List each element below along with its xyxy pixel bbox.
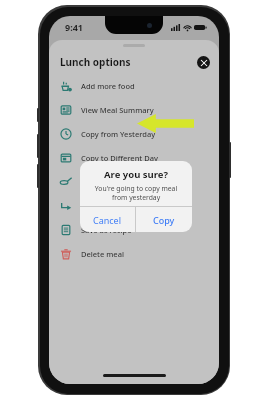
button[interactable]: View Meal Summary — [49, 98, 219, 122]
staticText: Are you sure? — [104, 168, 168, 181]
staticText: You're going to copy meal from yesterday — [87, 184, 185, 202]
staticText: Delete meal — [81, 249, 124, 259]
staticText: Save as recipe — [81, 225, 132, 235]
button[interactable]: Delete meal — [49, 242, 219, 266]
button[interactable]: Copy — [136, 207, 192, 232]
staticText: 9:41 — [65, 21, 83, 33]
staticText: Lunch options — [60, 55, 131, 69]
staticText: Copy to Different Day — [81, 153, 158, 163]
button[interactable]: Edit meal — [49, 170, 219, 194]
button[interactable]: Save as recipe — [49, 218, 219, 242]
staticText: Add more food — [81, 81, 135, 91]
button[interactable]: Move to other meal — [49, 194, 219, 218]
button[interactable]: Close — [197, 56, 210, 69]
staticText: View Meal Summary — [81, 105, 154, 115]
button[interactable]: Copy from Yesterday — [49, 122, 219, 146]
staticText: Copy from Yesterday — [81, 129, 156, 139]
button[interactable]: Copy to Different Day — [49, 146, 219, 170]
staticText: Edit meal — [81, 177, 115, 187]
staticText: Move to other meal — [81, 201, 152, 211]
staticText: Copy — [153, 214, 175, 226]
button[interactable]: Cancel — [80, 207, 135, 232]
button[interactable]: Add more food — [49, 74, 219, 98]
staticText: Cancel — [93, 214, 122, 226]
